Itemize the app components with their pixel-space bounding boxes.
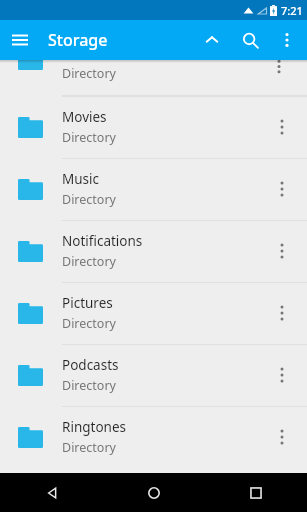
staticText: Music (62, 170, 100, 188)
button[interactable]: Home (103, 473, 205, 512)
staticText: Directory (62, 439, 116, 456)
staticText: Ringtones (62, 418, 126, 436)
staticText: Podcasts (62, 356, 119, 374)
staticText: Movies (62, 108, 107, 126)
staticText: Storage (48, 29, 108, 51)
staticText: Directory (62, 377, 116, 394)
staticText: Directory (62, 253, 116, 270)
button[interactable]: Music (0, 158, 307, 220)
staticText: Directory (62, 315, 116, 332)
staticText: Pictures (62, 294, 113, 312)
staticText: 7:21 (281, 3, 303, 18)
button[interactable]: More options (269, 22, 305, 58)
staticText: Directory (62, 65, 116, 82)
staticText: Notifications (62, 232, 143, 250)
button[interactable]: More options for Notifications (265, 220, 299, 282)
button[interactable]: More options for Podcasts (265, 344, 299, 406)
button[interactable]: Ringtones (0, 406, 307, 468)
button[interactable]: Open navigation drawer (0, 20, 40, 60)
button[interactable]: Notifications (0, 220, 307, 282)
button[interactable]: More options for Music (265, 158, 299, 220)
button[interactable]: More options for Ringtones (265, 406, 299, 468)
button[interactable]: Podcasts (0, 344, 307, 406)
button[interactable]: Movies (0, 96, 307, 158)
button[interactable]: Pictures (0, 282, 307, 344)
button[interactable]: Directory (0, 60, 307, 96)
button[interactable]: Back (0, 473, 103, 512)
button[interactable]: More options for Movies (265, 96, 299, 158)
button[interactable]: Recent apps (205, 473, 307, 512)
button[interactable]: Search (231, 21, 269, 59)
button[interactable]: Go up (193, 21, 231, 59)
staticText: Directory (62, 129, 116, 146)
button[interactable]: More options for Pictures (265, 282, 299, 344)
staticText: Directory (62, 191, 116, 208)
